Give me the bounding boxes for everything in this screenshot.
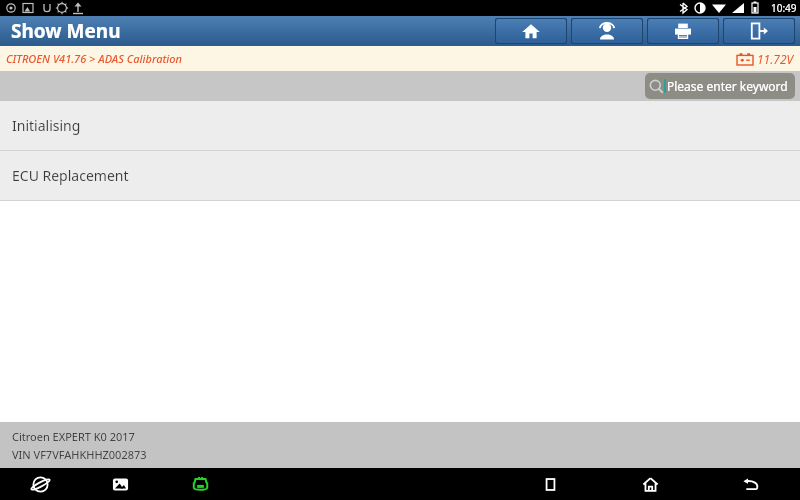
button[interactable]: Home	[496, 19, 566, 43]
button[interactable]: Exit	[724, 19, 794, 43]
button[interactable]: Home	[600, 468, 700, 500]
staticText: 11.72V	[757, 51, 794, 67]
staticText: 10:49	[771, 1, 797, 15]
staticText: Show Menu	[11, 18, 121, 44]
button[interactable]: ECU Replacement	[0, 151, 800, 200]
staticText: Citroen EXPERT K0 2017	[12, 429, 135, 444]
staticText: VIN VF7VFAHKHHZ002873	[12, 447, 147, 462]
button[interactable]: Initialising	[0, 101, 800, 150]
button[interactable]: Support	[572, 19, 642, 43]
button[interactable]: Back	[700, 468, 800, 500]
button[interactable]: Screenshots	[80, 468, 160, 500]
button[interactable]: Please enter keyword	[645, 73, 795, 99]
button[interactable]: Browser	[0, 468, 80, 500]
button[interactable]: Recents	[500, 468, 600, 500]
staticText: Initialising	[12, 116, 81, 135]
button[interactable]: VCI Connection	[160, 468, 240, 500]
staticText: Please enter keyword	[667, 78, 788, 94]
staticText: CITROEN V41.76 > ADAS Calibration	[6, 51, 183, 66]
staticText: ECU Replacement	[12, 166, 129, 185]
button[interactable]: Print	[648, 19, 718, 43]
